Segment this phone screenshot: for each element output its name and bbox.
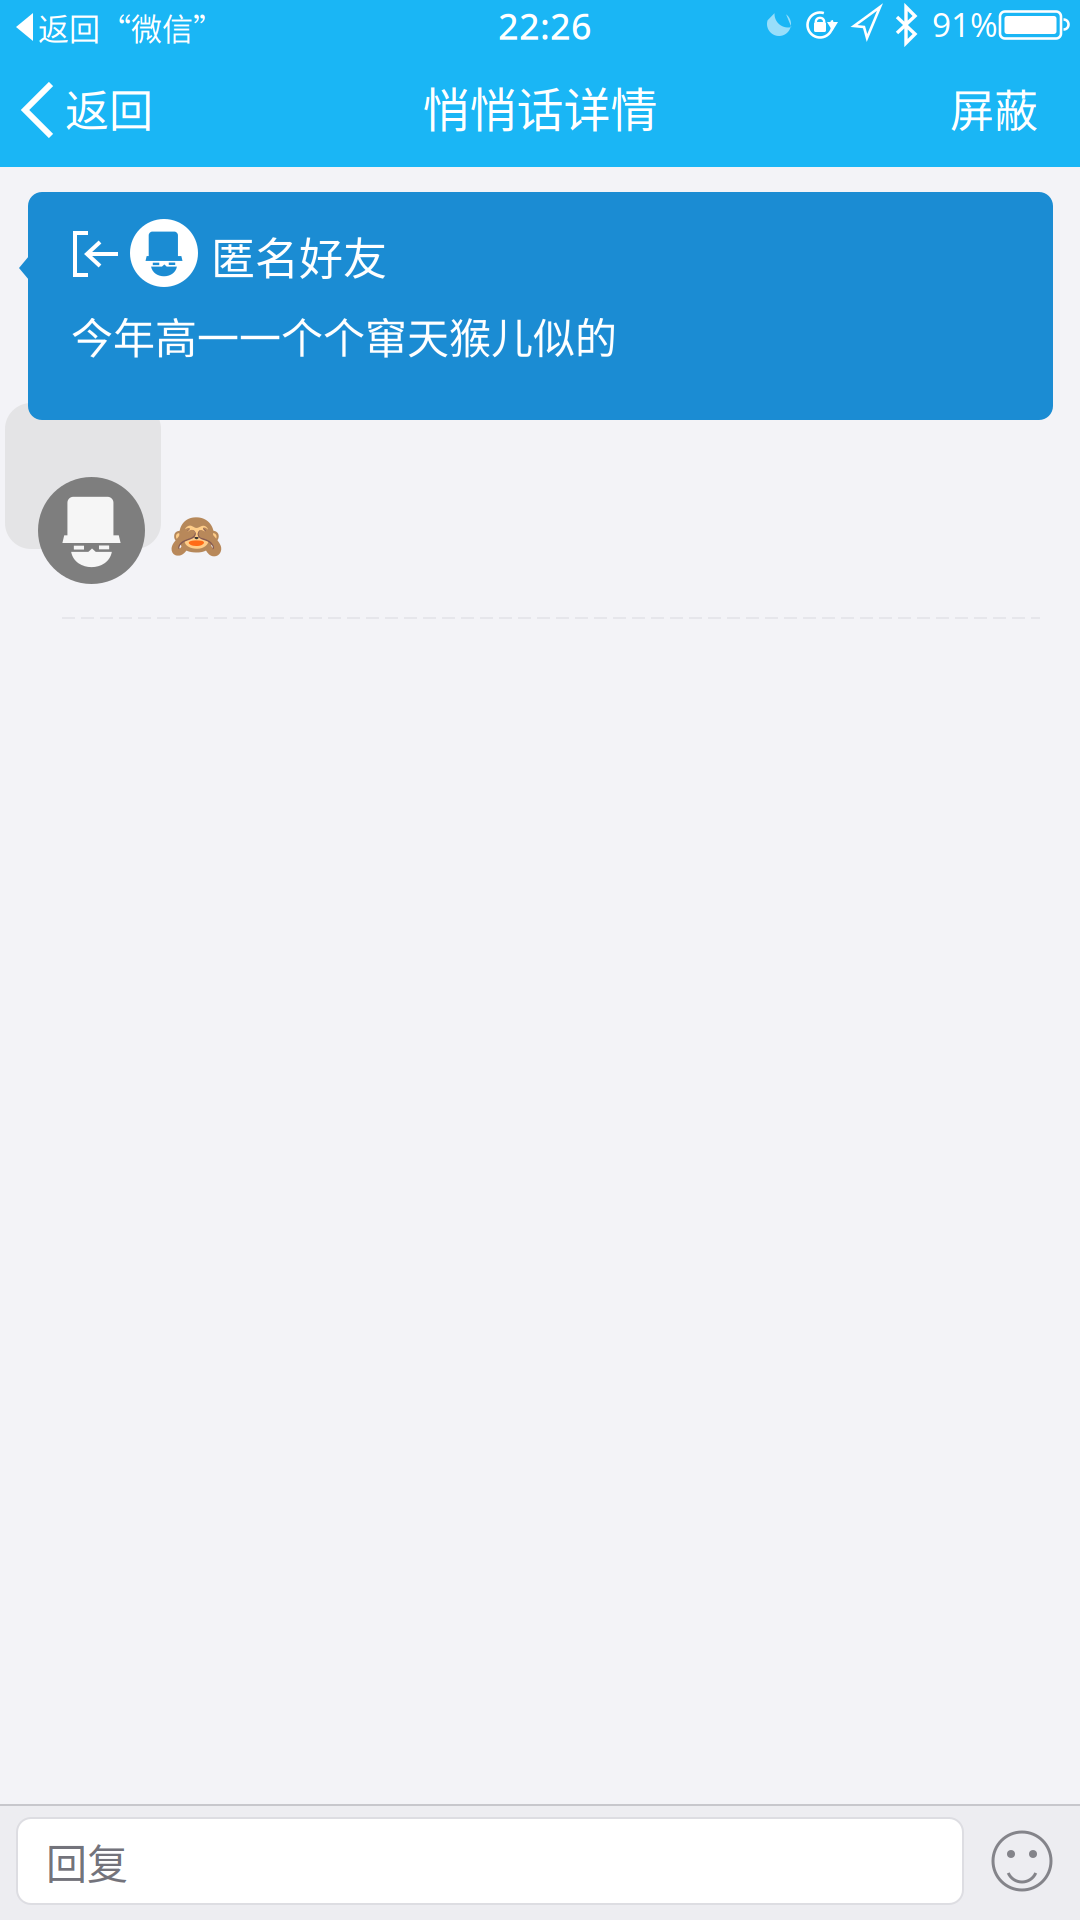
staticText: 返回 [65, 76, 153, 140]
button[interactable]: 返回 [0, 60, 179, 160]
staticText: 屏蔽 [950, 76, 1038, 140]
staticText: 今年高一一个个窜天猴儿似的 [71, 305, 617, 366]
button[interactable]: 回复 [17, 1818, 963, 1904]
button[interactable]: 返回“微信” [2, 3, 238, 51]
staticText: 返回“微信” [38, 5, 224, 49]
button[interactable]: Emoji keyboard [991, 1830, 1053, 1892]
button[interactable]: 屏蔽 [918, 58, 1070, 158]
staticText: 🙈 [169, 510, 224, 562]
staticText: 回复 [46, 1831, 128, 1891]
staticText: 悄悄话详情 [422, 72, 657, 141]
staticText: 匿名好友 [211, 224, 387, 288]
staticText: 91% [932, 2, 998, 46]
staticText: 22:26 [498, 2, 592, 50]
